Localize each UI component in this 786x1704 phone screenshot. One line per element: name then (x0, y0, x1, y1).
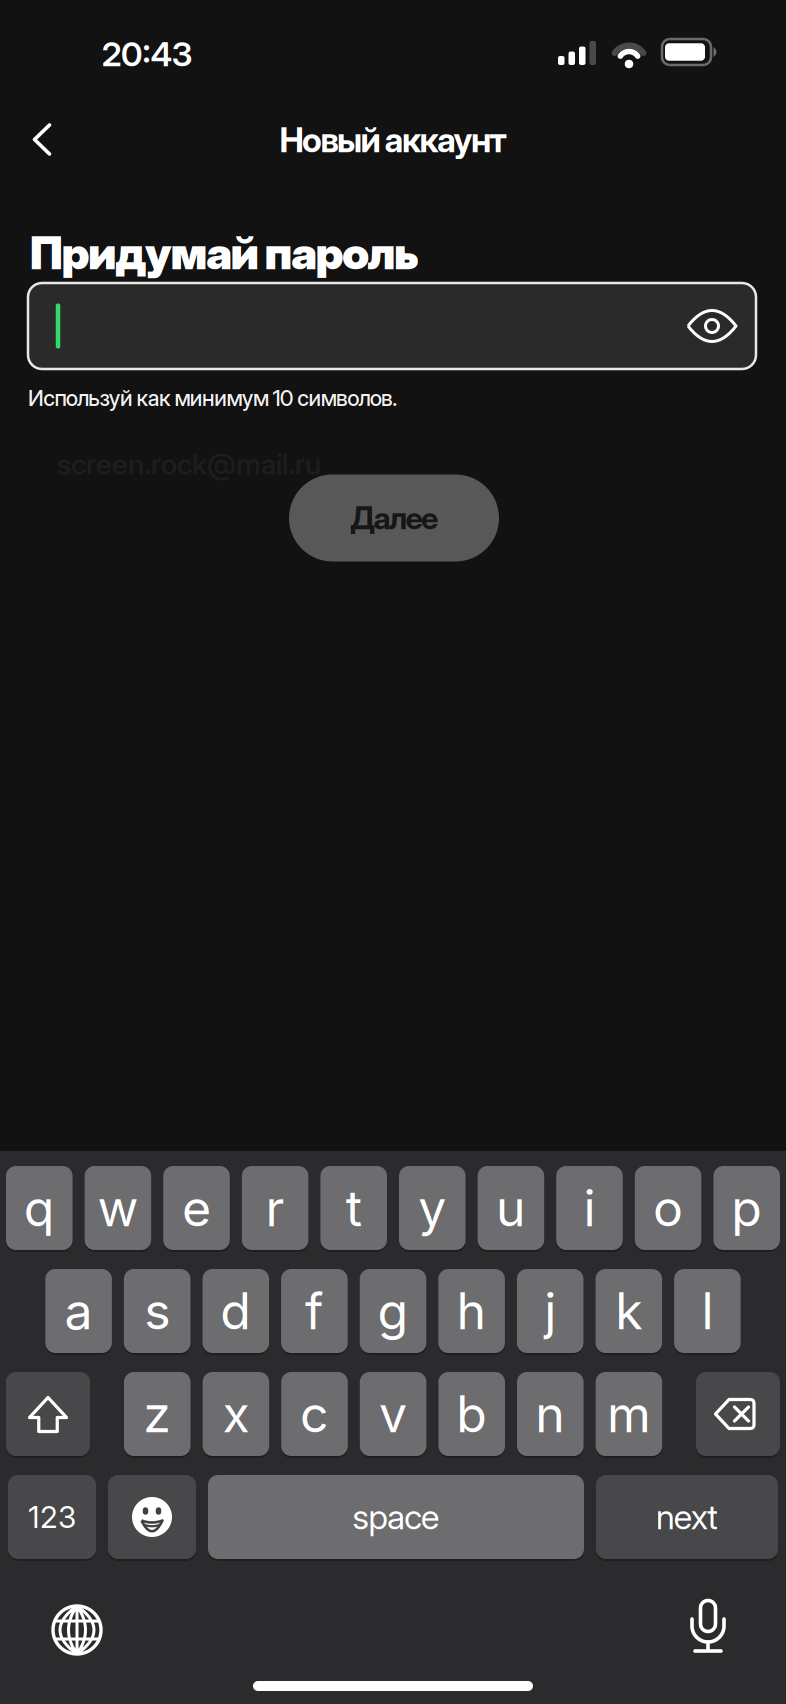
staticText: l (701, 1281, 713, 1341)
button[interactable]: a (45, 1269, 112, 1353)
staticText: Новый аккаунт (279, 119, 506, 160)
button[interactable]: b (438, 1372, 505, 1456)
staticText: c (300, 1384, 329, 1444)
button[interactable]: j (517, 1269, 583, 1353)
button[interactable]: o (635, 1166, 701, 1250)
button[interactable]: w (85, 1166, 151, 1250)
staticText: s (144, 1281, 170, 1341)
button[interactable]: Delete (696, 1372, 780, 1456)
staticText: Придумай пароль (30, 226, 419, 280)
staticText: p (731, 1178, 762, 1238)
staticText: d (220, 1281, 251, 1341)
button[interactable]: Next keyboard (45, 1598, 109, 1662)
staticText: j (544, 1281, 556, 1341)
button[interactable]: t (320, 1166, 387, 1250)
staticText: n (535, 1384, 565, 1444)
button[interactable]: k (595, 1269, 662, 1353)
button[interactable]: u (478, 1166, 544, 1250)
staticText: k (615, 1281, 642, 1341)
button[interactable]: Show password (680, 294, 744, 358)
button[interactable]: c (281, 1372, 348, 1456)
button[interactable]: g (360, 1269, 426, 1353)
button[interactable]: Shift (6, 1372, 90, 1456)
button[interactable]: Далее (289, 474, 499, 561)
button[interactable]: q (6, 1166, 73, 1250)
button[interactable]: s (124, 1269, 190, 1353)
staticText: o (653, 1178, 683, 1238)
button[interactable]: l (674, 1269, 741, 1353)
button[interactable]: y (399, 1166, 466, 1250)
button[interactable]: 123 (8, 1475, 96, 1559)
button[interactable]: z (124, 1372, 191, 1456)
button[interactable]: r (242, 1166, 308, 1250)
staticText: q (24, 1178, 55, 1238)
staticText: z (143, 1384, 171, 1444)
button[interactable]: next (596, 1475, 778, 1559)
staticText: screen.rock@mail.ru (57, 446, 321, 482)
button[interactable]: p (713, 1166, 780, 1250)
button[interactable]: f (281, 1269, 348, 1353)
staticText: Далее (350, 499, 438, 537)
staticText: 123 (28, 1499, 76, 1535)
staticText: g (377, 1281, 408, 1341)
staticText: space (352, 1496, 440, 1537)
button[interactable]: Emoji (108, 1475, 196, 1559)
staticText: e (182, 1178, 211, 1238)
staticText: a (65, 1281, 93, 1341)
button[interactable]: space (208, 1475, 584, 1559)
button[interactable]: i (556, 1166, 623, 1250)
button[interactable]: Back (10, 107, 74, 171)
staticText: 20:43 (101, 33, 192, 74)
staticText: i (583, 1178, 595, 1238)
button[interactable]: v (360, 1372, 426, 1456)
button[interactable]: m (596, 1372, 662, 1456)
staticText: r (266, 1178, 285, 1238)
staticText: f (305, 1281, 324, 1341)
button[interactable]: x (203, 1372, 269, 1456)
staticText: Используй как минимум 10 символов. (28, 385, 397, 411)
staticText: w (97, 1178, 138, 1238)
staticText: v (379, 1384, 407, 1444)
staticText: h (457, 1281, 487, 1341)
button[interactable]: e (163, 1166, 230, 1250)
staticText: y (418, 1178, 446, 1238)
button[interactable]: n (517, 1372, 584, 1456)
button[interactable]: h (438, 1269, 505, 1353)
button[interactable]: Dictation (676, 1594, 740, 1658)
button[interactable]: Password (28, 283, 756, 369)
staticText: u (496, 1178, 526, 1238)
staticText: t (346, 1178, 362, 1238)
staticText: b (456, 1384, 487, 1444)
button[interactable]: d (202, 1269, 269, 1353)
staticText: x (222, 1384, 249, 1444)
staticText: next (656, 1496, 718, 1537)
staticText: m (607, 1384, 651, 1444)
